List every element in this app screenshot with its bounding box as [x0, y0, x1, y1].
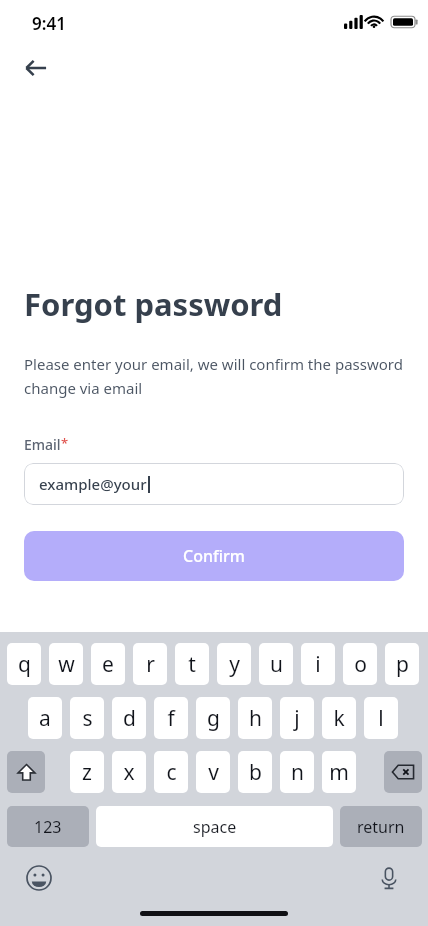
button[interactable]: g	[196, 697, 230, 739]
button[interactable]	[7, 751, 45, 793]
button[interactable]: return	[340, 806, 422, 847]
button[interactable]: w	[49, 643, 83, 685]
staticText: space	[193, 816, 237, 838]
staticText: z	[82, 758, 92, 787]
staticText: example@your	[39, 474, 147, 494]
button[interactable]: u	[259, 643, 293, 685]
button[interactable]: example@your	[24, 463, 404, 505]
staticText: 9:41	[32, 12, 66, 35]
button[interactable]: v	[196, 751, 230, 793]
staticText: t	[188, 650, 196, 679]
staticText: d	[123, 704, 136, 733]
button[interactable]: n	[280, 751, 314, 793]
button[interactable]: h	[238, 697, 272, 739]
button[interactable]: 123	[7, 806, 89, 847]
button[interactable]: Voice input	[371, 860, 407, 896]
staticText: return	[357, 816, 405, 838]
button[interactable]: s	[70, 697, 104, 739]
button[interactable]: Confirm	[24, 531, 404, 581]
staticText: h	[249, 704, 262, 733]
button[interactable]: q	[7, 643, 41, 685]
staticText: i	[315, 650, 321, 679]
staticText: Email	[24, 435, 61, 454]
staticText: o	[354, 650, 367, 679]
staticText: p	[396, 650, 409, 679]
button[interactable]: space	[96, 806, 333, 847]
staticText: f	[167, 704, 175, 733]
staticText: y	[229, 650, 240, 679]
button[interactable]: b	[238, 751, 272, 793]
staticText: q	[18, 650, 31, 679]
staticText: Confirm	[183, 545, 245, 567]
staticText: l	[378, 704, 384, 733]
button[interactable]: d	[112, 697, 146, 739]
button[interactable]: k	[322, 697, 356, 739]
button[interactable]: y	[217, 643, 251, 685]
button[interactable]	[384, 751, 422, 793]
staticText: v	[208, 758, 219, 787]
staticText: b	[249, 758, 262, 787]
staticText: r	[146, 650, 155, 679]
button[interactable]: f	[154, 697, 188, 739]
button[interactable]: c	[154, 751, 188, 793]
staticText: w	[58, 650, 75, 679]
staticText: x	[123, 758, 135, 787]
staticText: c	[166, 758, 177, 787]
staticText: j	[294, 704, 300, 733]
button[interactable]: t	[175, 643, 209, 685]
staticText: a	[39, 704, 51, 733]
button[interactable]: p	[385, 643, 419, 685]
staticText: g	[207, 704, 220, 733]
button[interactable]: m	[322, 751, 356, 793]
staticText: e	[102, 650, 114, 679]
staticText: m	[329, 758, 349, 787]
staticText: n	[291, 758, 304, 787]
button[interactable]: x	[112, 751, 146, 793]
button[interactable]: o	[343, 643, 377, 685]
button[interactable]: z	[70, 751, 104, 793]
button[interactable]: j	[280, 697, 314, 739]
button[interactable]: i	[301, 643, 335, 685]
button[interactable]: e	[91, 643, 125, 685]
button[interactable]: r	[133, 643, 167, 685]
staticText: u	[270, 650, 283, 679]
staticText: Please enter your email, we will confirm…	[24, 354, 404, 398]
staticText: k	[333, 704, 345, 733]
button[interactable]: Emoji	[21, 860, 57, 896]
staticText: *	[61, 434, 69, 452]
button[interactable]: a	[28, 697, 62, 739]
staticText: 123	[34, 816, 62, 838]
staticText: s	[82, 704, 93, 733]
button[interactable]: Back	[14, 46, 58, 90]
staticText: Forgot password	[24, 283, 283, 325]
button[interactable]: l	[364, 697, 398, 739]
